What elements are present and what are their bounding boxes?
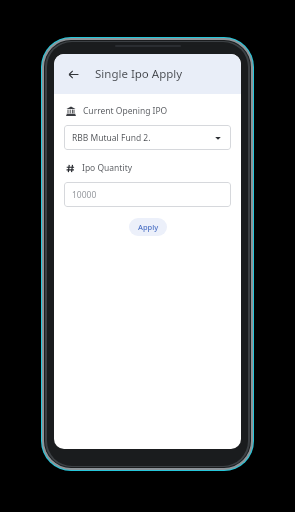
other: Open dropdown — [213, 133, 223, 143]
staticText: Current Opening IPO — [83, 105, 168, 117]
staticText: 10000 — [72, 189, 97, 201]
button[interactable]: 10000 — [64, 182, 231, 207]
button[interactable]: Back — [60, 61, 86, 87]
staticText: Single Ipo Apply — [95, 66, 183, 82]
staticText: Apply — [138, 222, 159, 232]
button[interactable]: Apply — [129, 218, 167, 236]
button[interactable]: RBB Mutual Fund 2. — [64, 125, 231, 150]
staticText: Ipo Quantity — [82, 162, 133, 174]
staticText: RBB Mutual Fund 2. — [72, 132, 151, 144]
